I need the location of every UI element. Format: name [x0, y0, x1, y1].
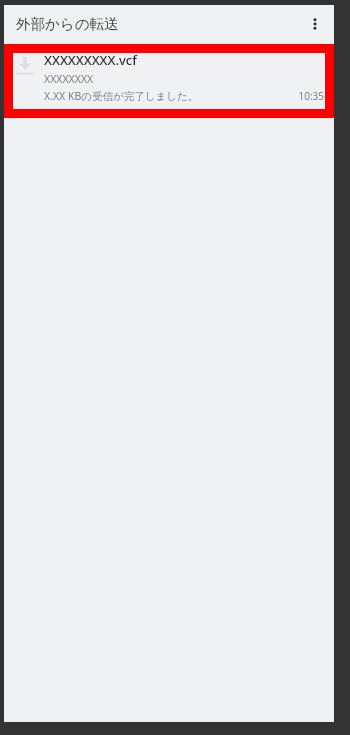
staticText: XXXXXXXX	[44, 72, 94, 86]
staticText: XXXXXXXXX.vcf	[44, 51, 137, 69]
button[interactable]: More options	[296, 5, 334, 42]
staticText: 外部からの転送	[16, 15, 119, 33]
staticText: X.XX KBの受信が完了しました。	[44, 89, 298, 103]
staticText: 10:35	[298, 89, 324, 103]
button[interactable]: XXXXXXXXX.vcf	[4, 44, 334, 113]
